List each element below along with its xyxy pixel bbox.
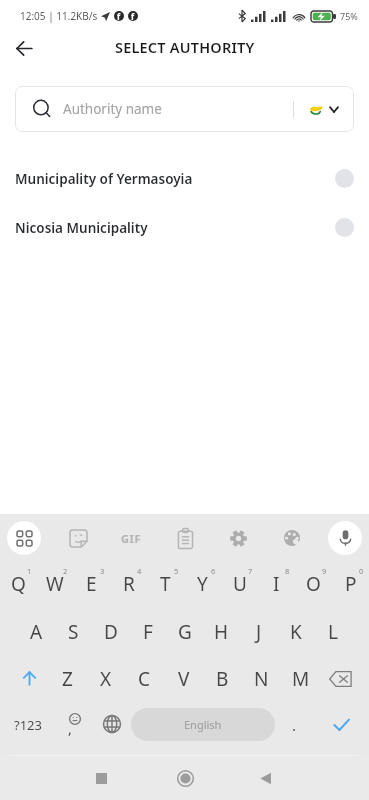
staticText: 75%: [340, 10, 358, 22]
staticText: f: [131, 11, 135, 21]
staticText: W: [46, 571, 64, 597]
staticText: Q: [11, 571, 26, 597]
staticText: 0: [359, 566, 364, 576]
button[interactable]: Done: [313, 702, 369, 747]
button[interactable]: Shift: [0, 655, 48, 702]
staticText: T: [160, 571, 171, 597]
button[interactable]: A: [18, 608, 55, 655]
staticText: F: [143, 619, 153, 645]
staticText: Authority name: [63, 100, 162, 118]
button[interactable]: Voice input: [328, 521, 362, 555]
button[interactable]: Backspace: [320, 655, 369, 702]
button[interactable]: Q: [0, 561, 36, 608]
staticText: V: [178, 666, 190, 692]
button[interactable]: U: [221, 561, 258, 608]
button[interactable]: P: [332, 561, 369, 608]
button[interactable]: J: [240, 608, 277, 655]
staticText: 4: [137, 566, 142, 576]
button[interactable]: Home: [167, 760, 203, 796]
staticText: S: [68, 619, 79, 645]
button[interactable]: Back: [7, 31, 41, 65]
staticText: 12:05 | 11.2KB/s: [20, 9, 98, 23]
staticText: B: [216, 666, 229, 692]
button[interactable]: M: [281, 655, 320, 702]
button[interactable]: Municipality of Yermasoyia: [0, 156, 369, 205]
staticText: ,: [68, 719, 72, 738]
staticText: I: [273, 571, 280, 597]
button[interactable]: E: [73, 561, 110, 608]
button[interactable]: Settings: [221, 521, 255, 555]
staticText: 1: [27, 566, 32, 576]
button[interactable]: Keyboard options: [7, 521, 41, 555]
staticText: U: [233, 571, 247, 597]
button[interactable]: ?123: [0, 702, 55, 747]
staticText: 6: [211, 566, 216, 576]
button[interactable]: .: [275, 702, 313, 747]
staticText: K: [290, 619, 302, 645]
staticText: 2: [63, 566, 68, 576]
staticText: O: [306, 571, 321, 597]
staticText: Nicosia Municipality: [15, 219, 148, 237]
staticText: D: [104, 619, 118, 645]
staticText: G: [178, 619, 192, 645]
staticText: H: [214, 619, 229, 645]
staticText: English: [184, 717, 222, 732]
staticText: C: [138, 666, 151, 692]
staticText: X: [100, 666, 112, 692]
staticText: 9: [322, 566, 327, 576]
staticText: GIF: [121, 531, 142, 546]
button[interactable]: W: [36, 561, 73, 608]
button[interactable]: F: [129, 608, 166, 655]
button[interactable]: S: [55, 608, 92, 655]
button[interactable]: H: [203, 608, 240, 655]
button[interactable]: X: [86, 655, 125, 702]
button[interactable]: G: [166, 608, 203, 655]
staticText: 3: [100, 566, 105, 576]
button[interactable]: B: [203, 655, 242, 702]
button[interactable]: English: [131, 708, 275, 741]
button[interactable]: Recents: [83, 760, 119, 796]
staticText: R: [123, 571, 135, 597]
button[interactable]: N: [242, 655, 281, 702]
button[interactable]: Nicosia Municipality: [0, 205, 369, 254]
staticText: ?123: [14, 716, 42, 734]
staticText: .: [292, 715, 297, 735]
button[interactable]: Change language: [93, 702, 131, 747]
staticText: 5: [174, 566, 179, 576]
button[interactable]: Z: [48, 655, 86, 702]
staticText: Y: [197, 571, 208, 597]
button[interactable]: GIF: [114, 521, 148, 555]
button[interactable]: Theme: [275, 521, 309, 555]
staticText: 8: [285, 566, 290, 576]
staticText: Z: [62, 666, 73, 692]
button[interactable]: Back: [247, 760, 283, 796]
button[interactable]: R: [110, 561, 147, 608]
button[interactable]: L: [314, 608, 351, 655]
button[interactable]: Authority name: [15, 86, 354, 132]
staticText: f: [117, 11, 121, 21]
button[interactable]: D: [92, 608, 129, 655]
staticText: L: [328, 619, 338, 645]
button[interactable]: Stickers: [61, 521, 95, 555]
staticText: 7: [248, 566, 253, 576]
button[interactable]: O: [295, 561, 332, 608]
staticText: M: [292, 666, 310, 692]
button[interactable]: V: [164, 655, 203, 702]
button[interactable]: Y: [184, 561, 221, 608]
staticText: SELECT AUTHORITY: [115, 37, 255, 57]
button[interactable]: K: [277, 608, 314, 655]
staticText: A: [30, 619, 43, 645]
staticText: E: [86, 571, 97, 597]
staticText: N: [254, 666, 269, 692]
button[interactable]: Clipboard: [168, 521, 202, 555]
staticText: P: [345, 571, 357, 597]
button[interactable]: T: [147, 561, 184, 608]
button[interactable]: Emoji: [55, 702, 93, 747]
button[interactable]: C: [125, 655, 164, 702]
staticText: Municipality of Yermasoyia: [15, 170, 193, 188]
button[interactable]: I: [258, 561, 295, 608]
staticText: J: [256, 619, 262, 645]
